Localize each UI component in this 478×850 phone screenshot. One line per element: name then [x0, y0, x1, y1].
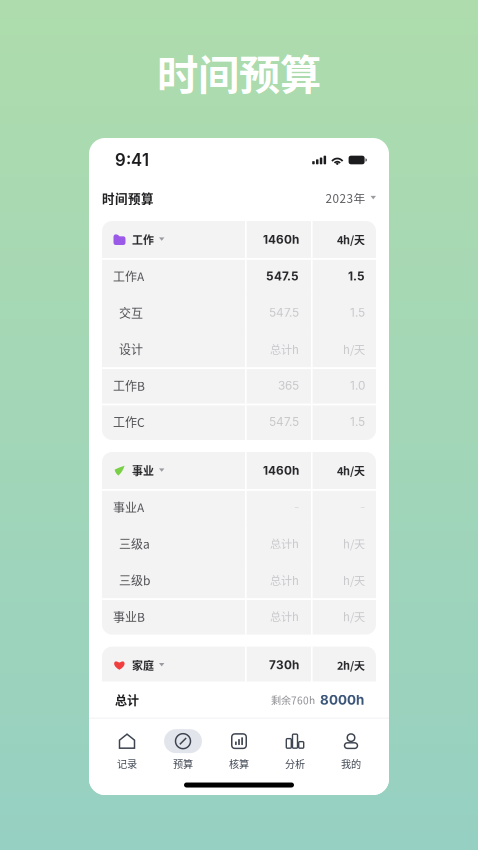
staticText: 核算 — [229, 756, 249, 771]
staticText: 记录 — [117, 756, 137, 771]
staticText: 总计 — [115, 691, 139, 709]
staticText: h/天 — [343, 341, 365, 357]
staticText: 2h/天 — [337, 657, 365, 673]
staticText: 事业B — [113, 608, 145, 625]
button[interactable]: 工作A — [102, 258, 376, 294]
staticText: 8000h — [320, 692, 364, 708]
staticText: 剩余760h — [271, 693, 315, 707]
staticText: 家庭A — [113, 693, 144, 710]
staticText: 547.5 — [269, 415, 299, 429]
staticText: 9:41 — [115, 150, 149, 170]
staticText: 总计h — [270, 535, 299, 552]
button[interactable]: 工作C — [102, 404, 376, 440]
staticText: 1.0 — [350, 378, 365, 392]
staticText: 1.5 — [348, 269, 365, 283]
staticText: h/天 — [343, 572, 365, 588]
staticText: 三级a — [119, 535, 150, 552]
staticText: 1460h — [263, 232, 299, 247]
button[interactable]: 事业A — [102, 489, 376, 525]
button[interactable]: 三级a — [102, 525, 376, 562]
staticText: 547.5 — [269, 305, 299, 320]
staticText: - — [360, 500, 365, 514]
staticText: h/天 — [343, 535, 365, 552]
staticText: 4h/天 — [337, 463, 365, 478]
staticText: 总计h — [270, 608, 299, 624]
staticText: 730h — [269, 658, 299, 672]
staticText: 2023年 — [325, 189, 365, 206]
staticText: 事业 — [132, 463, 154, 478]
staticText: 交互 — [119, 304, 143, 321]
staticText: 1.5 — [350, 305, 365, 320]
button[interactable]: 三级b — [102, 562, 376, 598]
staticText: 预算 — [173, 756, 193, 771]
button[interactable]: 记录 — [99, 729, 155, 771]
button[interactable]: 2023年 — [325, 189, 376, 206]
staticText: 设计 — [119, 340, 143, 358]
staticText: h/天 — [343, 694, 365, 710]
staticText: - — [294, 500, 299, 514]
staticText: 547.5 — [266, 269, 299, 283]
button[interactable]: 交互 — [102, 294, 376, 331]
button[interactable]: 工作 — [102, 221, 376, 258]
staticText: 总计h — [270, 694, 299, 710]
button[interactable]: 事业B — [102, 598, 376, 635]
button[interactable]: 家庭A — [102, 684, 376, 720]
button[interactable]: 工作B — [102, 367, 376, 404]
staticText: 总计h — [270, 341, 299, 357]
button[interactable]: 家庭 — [102, 647, 376, 684]
button[interactable]: 预算 — [155, 729, 211, 771]
staticText: 家庭 — [132, 657, 154, 673]
staticText: 工作 — [132, 232, 154, 247]
staticText: 三级b — [119, 571, 150, 589]
staticText: 我的 — [341, 756, 361, 771]
staticText: 4h/天 — [337, 232, 365, 247]
button[interactable]: 分析 — [267, 729, 323, 771]
staticText: 事业A — [113, 498, 144, 516]
staticText: 总计h — [270, 572, 299, 588]
staticText: 时间预算 — [157, 42, 321, 102]
staticText: 工作C — [113, 413, 145, 430]
staticText: 1460h — [263, 463, 299, 478]
button[interactable]: 设计 — [102, 331, 376, 367]
staticText: 时间预算 — [102, 189, 154, 207]
staticText: 工作B — [113, 377, 145, 394]
button[interactable]: 我的 — [323, 729, 379, 771]
staticText: 365 — [278, 378, 299, 392]
staticText: 1.5 — [350, 415, 365, 429]
button[interactable]: 事业 — [102, 452, 376, 489]
staticText: 工作A — [113, 267, 144, 285]
staticText: 分析 — [285, 756, 305, 771]
staticText: h/天 — [343, 608, 365, 624]
button[interactable]: 核算 — [211, 729, 267, 771]
